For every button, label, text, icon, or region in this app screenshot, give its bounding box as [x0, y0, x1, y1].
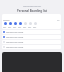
staticText: Step	[33, 26, 37, 28]
staticText: Complete your profile	[6, 36, 24, 38]
button[interactable]: Complete your profile	[2, 40, 61, 44]
button[interactable]: Complete your profile	[2, 35, 61, 39]
staticText: Progress	[3, 19, 10, 21]
button[interactable]: Complete your profile	[2, 45, 61, 49]
staticText: Personal Boarding list	[0, 9, 64, 13]
staticText: 4/7	[57, 19, 60, 21]
staticText: Step	[23, 26, 27, 28]
staticText: Step	[18, 26, 22, 28]
staticText: Complete your profile	[6, 41, 24, 43]
staticText: Step	[28, 26, 32, 28]
staticText: Complete your profile	[6, 31, 24, 33]
staticText: Step	[3, 26, 7, 28]
button[interactable]: Progress	[2, 14, 61, 29]
staticText: Step	[8, 26, 12, 28]
staticText: Step	[13, 26, 17, 28]
button[interactable]: Complete your profile	[2, 30, 61, 34]
staticText: Onboarding process	[0, 5, 64, 8]
staticText: Complete your profile	[6, 46, 24, 48]
